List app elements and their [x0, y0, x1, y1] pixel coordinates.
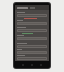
button[interactable]: [15, 54, 49, 60]
button[interactable]: [15, 19, 49, 25]
button[interactable]: [15, 11, 49, 17]
button[interactable]: [15, 26, 49, 32]
button[interactable]: [15, 5, 49, 10]
button[interactable]: [15, 48, 49, 54]
button[interactable]: [15, 34, 49, 40]
button[interactable]: [15, 42, 49, 48]
